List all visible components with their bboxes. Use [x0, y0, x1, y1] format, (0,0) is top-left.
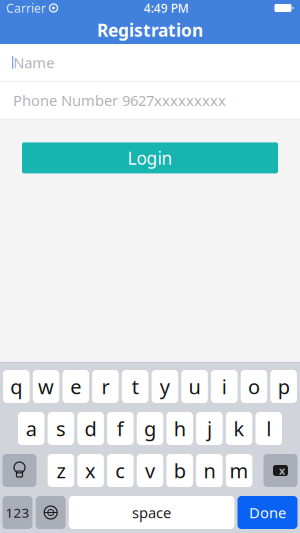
- staticText: g: [144, 415, 156, 442]
- staticText: p: [278, 373, 290, 400]
- staticText: w: [38, 373, 54, 400]
- button[interactable]: o: [241, 370, 267, 403]
- staticText: q: [10, 373, 22, 400]
- button[interactable]: k: [226, 412, 252, 445]
- button[interactable]: w: [33, 370, 59, 403]
- button[interactable]: a: [18, 412, 44, 445]
- button[interactable]: l: [255, 412, 282, 445]
- button[interactable]: Login: [22, 142, 278, 173]
- staticText: s: [56, 415, 66, 442]
- button[interactable]: q: [3, 370, 30, 403]
- staticText: Registration: [97, 18, 203, 41]
- button[interactable]: r: [92, 370, 119, 403]
- staticText: l: [266, 415, 271, 442]
- staticText: u: [188, 373, 200, 400]
- staticText: k: [234, 415, 245, 442]
- staticText: e: [70, 373, 81, 400]
- staticText: o: [248, 373, 260, 400]
- staticText: 4:49 PM: [144, 0, 189, 16]
- button[interactable]: h: [166, 412, 193, 445]
- button[interactable]: f: [107, 412, 133, 445]
- button[interactable]: p: [270, 370, 297, 403]
- button[interactable]: d: [77, 412, 104, 445]
- button[interactable]: Delete: [263, 454, 297, 487]
- button[interactable]: u: [181, 370, 208, 403]
- staticText: r: [101, 373, 109, 400]
- staticText: d: [85, 415, 97, 442]
- button[interactable]: v: [137, 454, 163, 487]
- button[interactable]: c: [107, 454, 134, 487]
- staticText: y: [160, 373, 170, 400]
- staticText: 123: [5, 504, 29, 521]
- staticText: f: [117, 415, 124, 442]
- button[interactable]: Done: [237, 496, 297, 529]
- button[interactable]: g: [137, 412, 163, 445]
- button[interactable]: j: [196, 412, 223, 445]
- button[interactable]: i: [211, 370, 237, 403]
- button[interactable]: x: [77, 454, 104, 487]
- button[interactable]: Numbers: [2, 496, 32, 529]
- button[interactable]: b: [166, 454, 193, 487]
- staticText: x: [85, 457, 96, 484]
- staticText: j: [207, 415, 212, 442]
- staticText: b: [174, 457, 186, 484]
- staticText: space: [132, 503, 171, 522]
- staticText: h: [174, 415, 186, 442]
- button[interactable]: z: [48, 454, 74, 487]
- staticText: c: [115, 457, 125, 484]
- staticText: i: [222, 373, 227, 400]
- staticText: z: [56, 457, 65, 484]
- button[interactable]: Next keyboard: [36, 496, 66, 529]
- button[interactable]: t: [122, 370, 148, 403]
- staticText: v: [145, 457, 155, 484]
- button[interactable]: n: [196, 454, 223, 487]
- button[interactable]: Shift: [2, 454, 36, 487]
- button[interactable]: s: [48, 412, 74, 445]
- button[interactable]: m: [226, 454, 252, 487]
- staticText: Phone Number 9627xxxxxxxxx: [13, 90, 226, 110]
- staticText: Login: [127, 146, 172, 169]
- staticText: Carrier: [6, 0, 46, 16]
- staticText: m: [230, 457, 249, 484]
- staticText: a: [26, 415, 37, 442]
- staticText: x: [279, 463, 285, 478]
- staticText: n: [203, 457, 215, 484]
- staticText: [46, 0, 49, 16]
- staticText: Done: [249, 503, 286, 522]
- button[interactable]: space: [69, 496, 234, 529]
- staticText: Name: [13, 53, 54, 72]
- button[interactable]: y: [152, 370, 178, 403]
- staticText: t: [132, 373, 139, 400]
- button[interactable]: e: [62, 370, 89, 403]
